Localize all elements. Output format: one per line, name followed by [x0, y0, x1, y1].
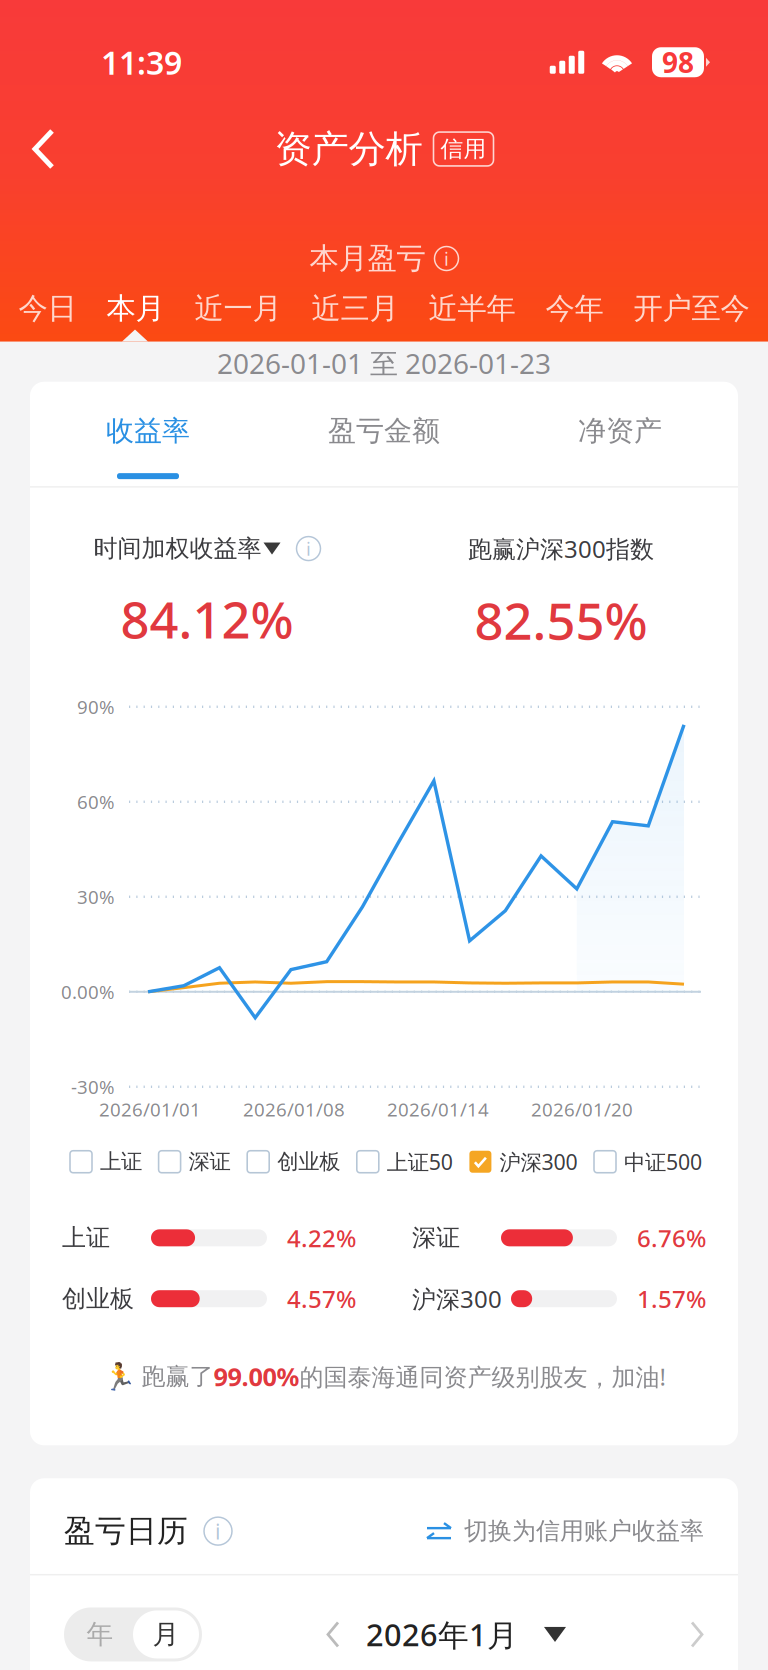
staticText: 跑赢沪深300指数 — [468, 533, 654, 564]
staticText: 收益率 — [106, 414, 190, 448]
staticText: 近半年 — [428, 290, 515, 326]
staticText: 4.57% — [287, 1283, 356, 1315]
staticText: 2026/01/01 — [99, 1097, 201, 1122]
button[interactable]: 中证500 — [594, 1148, 702, 1176]
staticText: 近三月 — [311, 290, 398, 326]
staticText: 跑赢了 — [141, 1362, 213, 1391]
button[interactable]: 开户至今 — [633, 284, 749, 332]
button[interactable]: 切换为信用账户收益率 — [426, 1516, 704, 1546]
button[interactable]: 今日 — [18, 284, 76, 332]
button[interactable]: 近半年 — [428, 284, 515, 332]
staticText: 2026/01/08 — [243, 1097, 345, 1122]
button[interactable]: 上证 — [70, 1149, 142, 1175]
staticText: i — [444, 246, 449, 271]
button[interactable]: Next month — [690, 1620, 704, 1648]
button[interactable]: 深证 — [159, 1149, 231, 1175]
staticText: 信用 — [440, 135, 486, 163]
staticText: 上证50 — [387, 1148, 453, 1176]
staticText: 沪深300 — [499, 1148, 577, 1176]
staticText: 深证 — [412, 1223, 460, 1253]
staticText: 2026-01-01 至 2026-01-23 — [217, 345, 551, 382]
staticText: i — [215, 1517, 221, 1545]
button[interactable]: 收益率 — [30, 382, 266, 486]
staticText: 沪深300 — [412, 1283, 502, 1315]
staticText: 盈亏金额 — [328, 414, 440, 448]
staticText: 本月 — [106, 290, 164, 326]
staticText: 2026/01/20 — [531, 1097, 633, 1122]
staticText: 11:39 — [101, 41, 182, 83]
staticText: 今年 — [545, 290, 603, 326]
button[interactable]: 近一月 — [194, 284, 281, 332]
staticText: 近一月 — [194, 290, 281, 326]
staticText: -30% — [71, 1074, 115, 1099]
staticText: 创业板 — [62, 1284, 134, 1313]
staticText: 4.22% — [287, 1222, 356, 1254]
staticText: 月 — [152, 1618, 179, 1651]
staticText: 30% — [77, 884, 115, 909]
button[interactable]: 创业板 — [247, 1149, 340, 1175]
staticText: 切换为信用账户收益率 — [464, 1516, 704, 1546]
staticText: 开户至今 — [633, 290, 749, 326]
staticText: 创业板 — [277, 1149, 340, 1175]
staticText: 上证 — [62, 1223, 110, 1253]
staticText: 净资产 — [578, 414, 662, 448]
staticText: 年 — [86, 1618, 113, 1651]
staticText: 90% — [77, 694, 115, 719]
button[interactable]: 年 — [67, 1610, 133, 1658]
staticText: i — [306, 536, 311, 561]
staticText: 0.00% — [61, 979, 115, 1004]
staticText: 2026年1月 — [366, 1614, 518, 1655]
button[interactable]: 近三月 — [311, 284, 398, 332]
button[interactable]: 上证50 — [357, 1148, 453, 1176]
button[interactable]: Previous month — [326, 1620, 340, 1648]
staticText: 60% — [77, 789, 115, 814]
staticText: 🏃 — [102, 1361, 135, 1392]
staticText: 2026/01/14 — [387, 1097, 489, 1122]
staticText: 的国泰海通同资产级别股友，加油! — [299, 1360, 665, 1392]
staticText: 上证 — [100, 1149, 142, 1175]
button[interactable]: 本月 — [106, 284, 164, 332]
staticText: 84.12% — [120, 585, 293, 653]
button[interactable]: 沪深300 — [469, 1148, 577, 1176]
button[interactable]: Back — [10, 116, 77, 182]
staticText: 6.76% — [637, 1222, 706, 1254]
staticText: 98 — [662, 44, 694, 81]
button[interactable]: 净资产 — [502, 382, 738, 486]
button[interactable]: 盈亏金额 — [266, 382, 502, 486]
staticText: 资产分析 — [274, 126, 422, 172]
staticText: 时间加权收益率 — [93, 534, 261, 563]
staticText: 今日 — [18, 290, 76, 326]
staticText: 1.57% — [637, 1283, 706, 1315]
staticText: 中证500 — [624, 1148, 702, 1176]
staticText: 82.55% — [474, 586, 647, 654]
staticText: 本月盈亏 — [309, 240, 425, 276]
staticText: 深证 — [189, 1149, 231, 1175]
staticText: 99.00% — [213, 1360, 299, 1393]
button[interactable]: 今年 — [545, 284, 603, 332]
button[interactable]: 月 — [133, 1610, 199, 1658]
staticText: 盈亏日历 — [64, 1512, 188, 1550]
